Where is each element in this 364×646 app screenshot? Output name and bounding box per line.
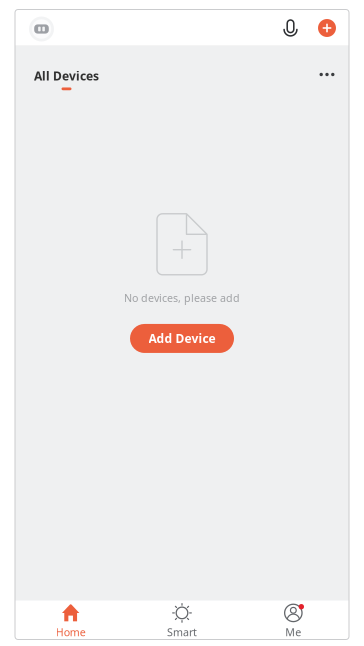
button[interactable]: Add xyxy=(312,11,349,43)
button[interactable]: Add Device xyxy=(130,324,234,353)
staticText: All Devices xyxy=(34,68,99,84)
button[interactable]: Smart xyxy=(126,597,238,643)
button[interactable]: All Devices xyxy=(15,68,99,90)
button[interactable]: Voice control xyxy=(275,11,312,43)
staticText: Home xyxy=(56,625,86,639)
staticText: No devices, please add xyxy=(124,291,240,305)
button[interactable]: More options xyxy=(310,68,349,90)
button[interactable]: Home hub xyxy=(15,15,60,40)
staticText: Me xyxy=(285,625,301,639)
button[interactable]: Home xyxy=(15,597,126,643)
staticText: Add Device xyxy=(148,330,215,346)
staticText: Smart xyxy=(167,625,197,639)
button[interactable]: Me xyxy=(238,597,349,643)
